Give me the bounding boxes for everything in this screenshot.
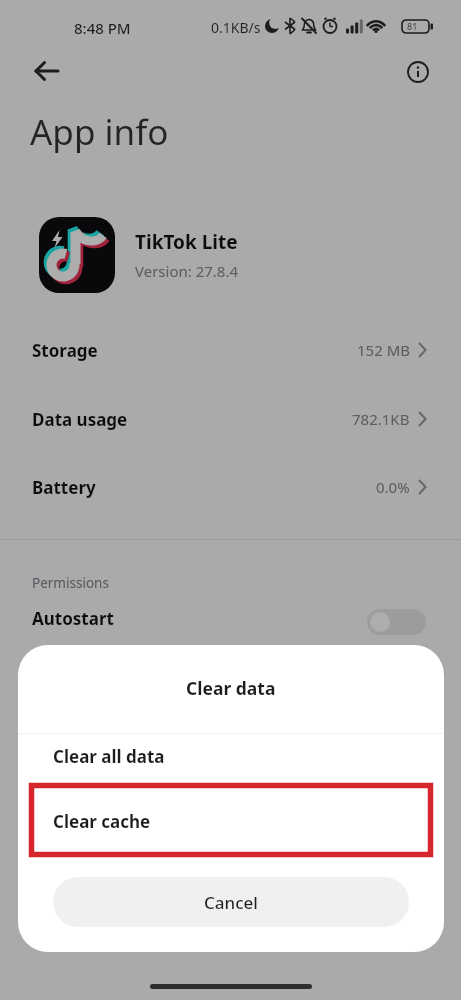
- staticText: Clear data: [186, 676, 276, 700]
- staticText: Autostart: [32, 607, 114, 630]
- staticText: Storage: [32, 339, 98, 362]
- button[interactable]: Data usage: [0, 395, 461, 443]
- staticText: Data usage: [32, 408, 128, 431]
- staticText: Cancel: [204, 891, 258, 914]
- button[interactable]: Clear all data: [18, 734, 444, 779]
- staticText: 152 MB: [357, 340, 410, 360]
- button[interactable]: Clear cache: [18, 799, 444, 844]
- button[interactable]: Battery: [0, 463, 461, 511]
- staticText: Permissions: [32, 574, 109, 592]
- staticText: 0.1KB/s: [211, 18, 261, 37]
- staticText: Version: 27.8.4: [135, 261, 239, 281]
- button[interactable]: Autostart: [0, 596, 461, 640]
- staticText: Clear cache: [53, 810, 151, 833]
- button[interactable]: [31, 59, 63, 85]
- button[interactable]: Cancel: [53, 877, 409, 927]
- button[interactable]: [407, 61, 429, 83]
- button[interactable]: Storage: [0, 326, 461, 374]
- staticText: 782.1KB: [352, 409, 410, 429]
- staticText: 0.0%: [376, 477, 410, 497]
- staticText: Clear all data: [53, 745, 165, 768]
- button[interactable]: [367, 609, 426, 635]
- staticText: TikTok Lite: [135, 229, 238, 255]
- staticText: 81: [407, 20, 418, 32]
- staticText: App info: [30, 108, 169, 156]
- staticText: Battery: [32, 476, 96, 499]
- staticText: 8:48 PM: [74, 18, 131, 38]
